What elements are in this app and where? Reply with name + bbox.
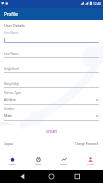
button[interactable]: Alarm xyxy=(25,148,51,170)
button[interactable]: Gender xyxy=(4,107,99,121)
staticText: Male xyxy=(4,113,13,118)
staticText: Athlete xyxy=(4,97,16,102)
staticText: Profile xyxy=(87,163,94,166)
staticText: User Details xyxy=(4,23,25,28)
staticText: Fitness Type xyxy=(4,91,21,95)
staticText: Alarm xyxy=(35,163,42,166)
staticText: UPDATE xyxy=(46,130,58,134)
button[interactable]: Height(cm) xyxy=(4,58,99,73)
staticText: Height(cm) xyxy=(4,67,20,71)
button[interactable]: Fitness Type xyxy=(4,91,99,105)
button[interactable]: Last Name xyxy=(4,43,99,58)
staticText: Gender xyxy=(4,107,15,111)
staticText: First Name xyxy=(4,31,19,35)
staticText: Home xyxy=(9,163,16,166)
button[interactable]: History xyxy=(51,148,77,170)
button[interactable]: Logout xyxy=(4,142,14,146)
staticText: History xyxy=(60,163,68,166)
button[interactable]: UPDATE xyxy=(41,129,63,135)
staticText: Weight(kg) xyxy=(4,82,19,86)
staticText: Profile xyxy=(4,11,18,17)
button[interactable]: Home xyxy=(0,148,25,170)
staticText: Last Name xyxy=(4,52,19,56)
button[interactable]: Change Password xyxy=(75,142,99,146)
staticText: 12:46 xyxy=(93,2,102,6)
button[interactable]: Weight(kg) xyxy=(4,73,99,88)
button[interactable]: Profile xyxy=(77,148,103,170)
button[interactable]: First Name xyxy=(4,31,99,43)
